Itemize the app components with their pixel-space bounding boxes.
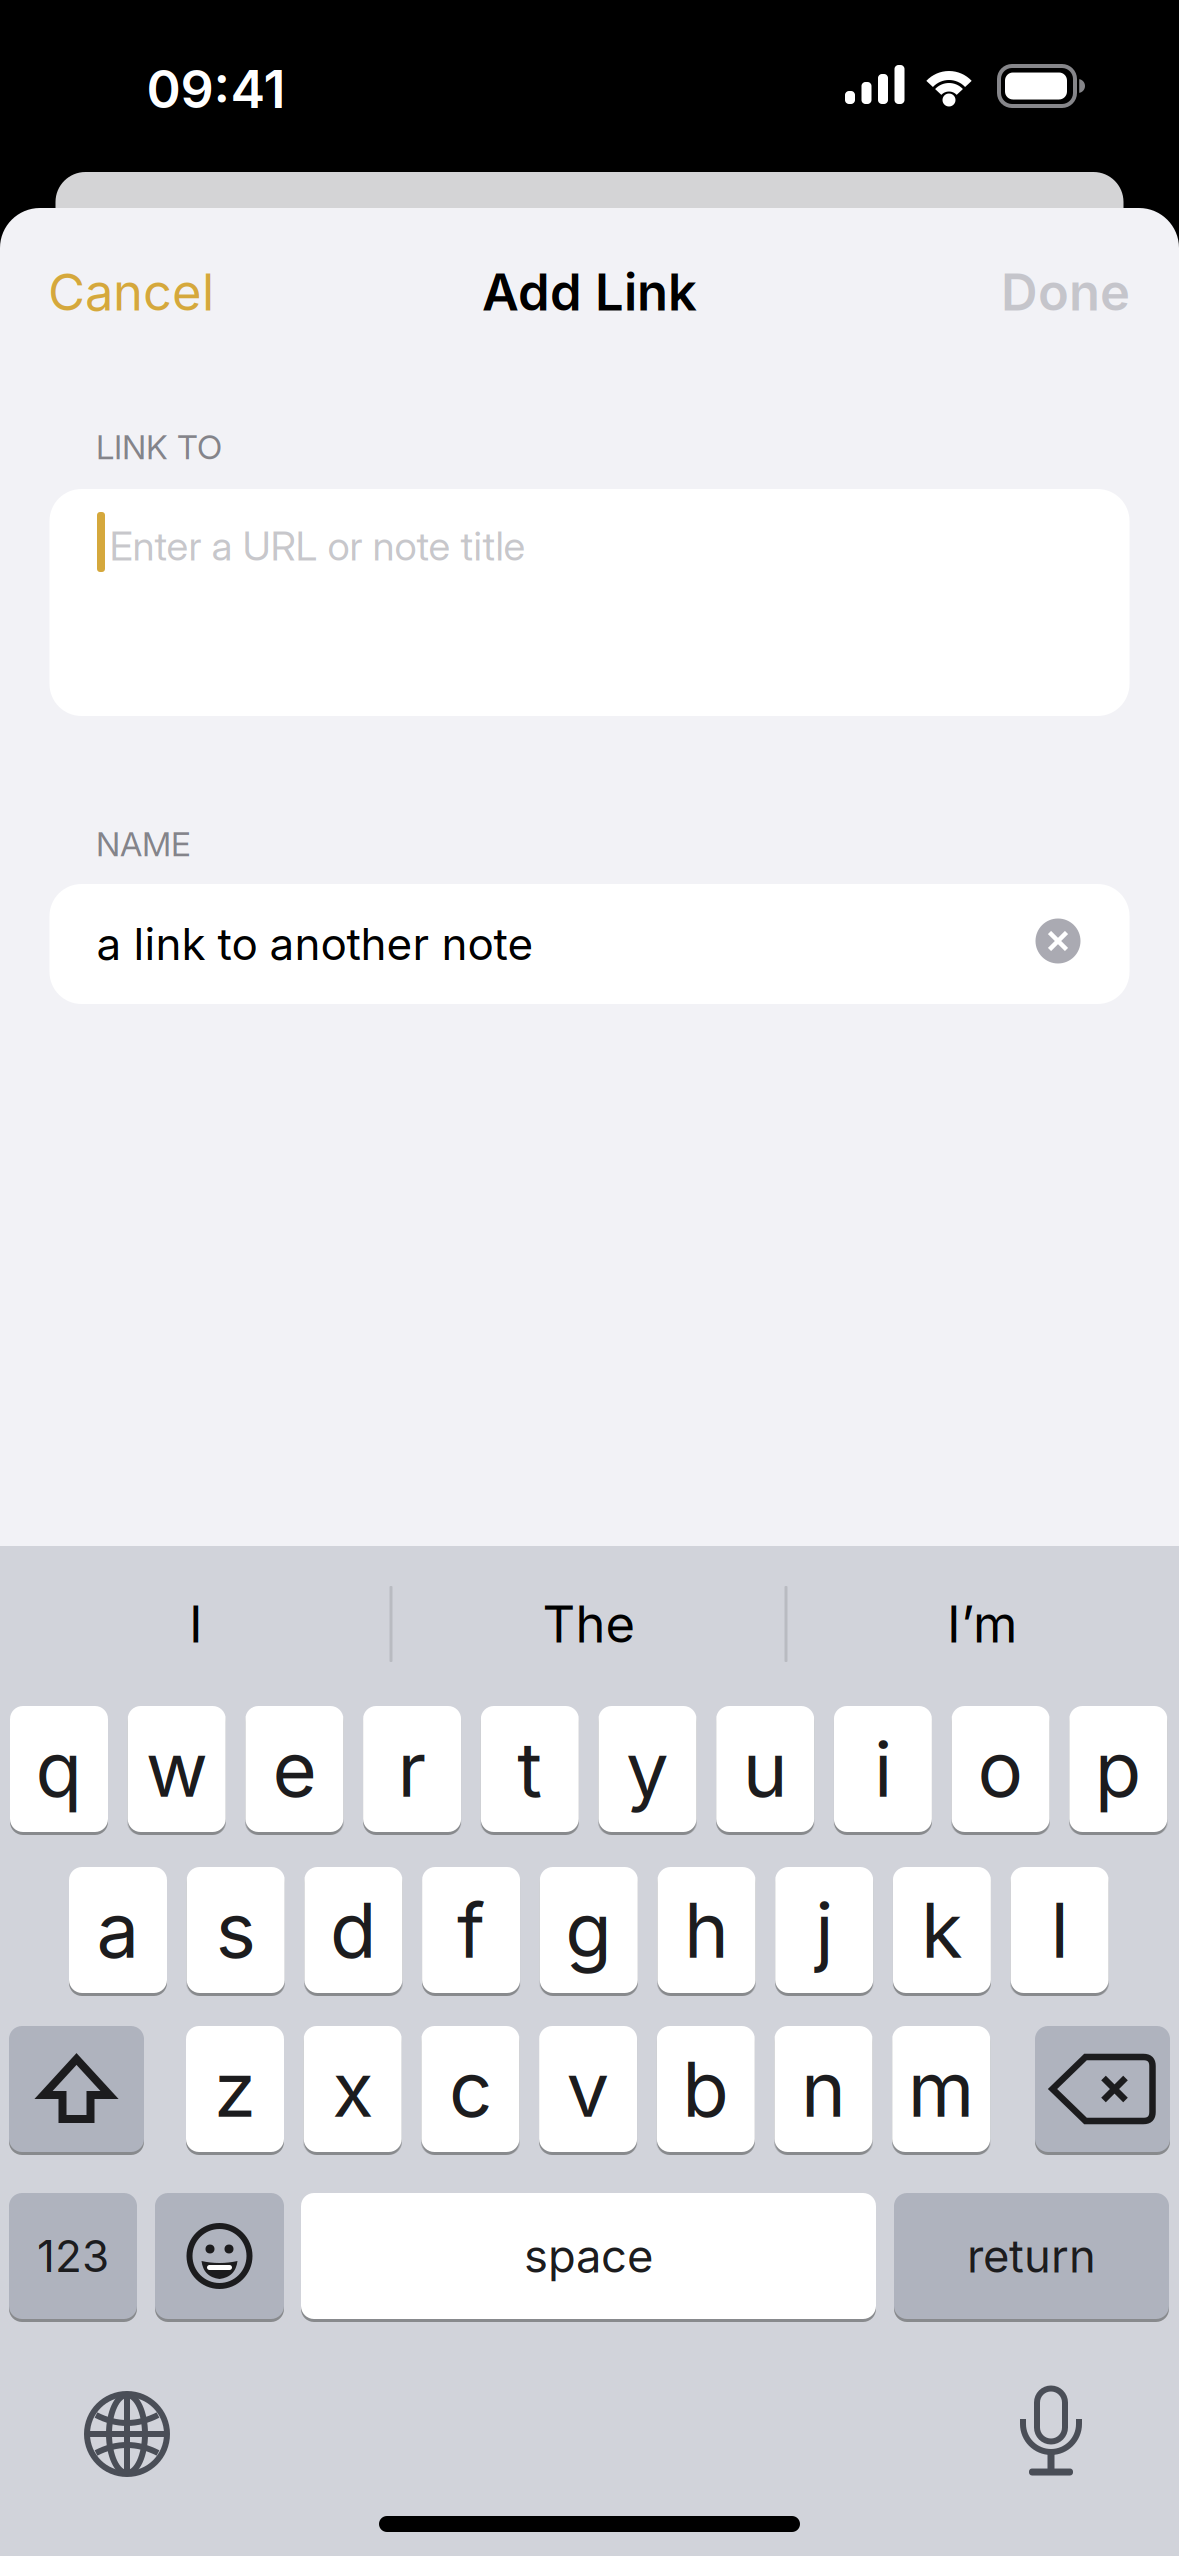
button[interactable]: u bbox=[716, 1706, 814, 1832]
button[interactable]: p bbox=[1069, 1706, 1167, 1832]
button[interactable]: o bbox=[952, 1706, 1050, 1832]
staticText: k bbox=[921, 1885, 963, 1975]
button[interactable]: Dictation bbox=[991, 2372, 1111, 2492]
staticText: r bbox=[398, 1724, 427, 1814]
staticText: o bbox=[978, 1724, 1024, 1814]
button[interactable]: d bbox=[304, 1867, 402, 1993]
button[interactable]: Clear text bbox=[1035, 918, 1080, 963]
button[interactable]: I’m bbox=[792, 1569, 1172, 1679]
button[interactable]: g bbox=[540, 1867, 638, 1993]
button[interactable]: v bbox=[539, 2026, 637, 2152]
staticText: NAME bbox=[96, 824, 191, 864]
button[interactable]: 123 bbox=[9, 2193, 137, 2319]
button[interactable]: I bbox=[6, 1569, 386, 1679]
button[interactable]: Cancel bbox=[48, 262, 348, 322]
staticText: e bbox=[272, 1724, 316, 1814]
button[interactable]: t bbox=[481, 1706, 579, 1832]
staticText: s bbox=[216, 1885, 256, 1975]
staticText: f bbox=[457, 1885, 485, 1975]
staticText: p bbox=[1095, 1724, 1142, 1814]
button[interactable]: Delete bbox=[1035, 2026, 1170, 2152]
staticText: u bbox=[743, 1724, 788, 1814]
button[interactable]: return bbox=[894, 2193, 1169, 2319]
button[interactable]: Next keyboard bbox=[67, 2374, 187, 2494]
staticText: q bbox=[35, 1724, 82, 1814]
staticText: v bbox=[567, 2044, 610, 2134]
staticText: a bbox=[96, 1885, 139, 1975]
staticText: j bbox=[815, 1885, 833, 1975]
staticText: t bbox=[517, 1724, 542, 1814]
button[interactable]: Name bbox=[49, 884, 1129, 1004]
button[interactable]: Done bbox=[830, 262, 1130, 322]
staticText: Add Link bbox=[482, 262, 697, 322]
staticText: The bbox=[542, 1594, 635, 1654]
staticText: x bbox=[332, 2044, 373, 2134]
button[interactable]: c bbox=[421, 2026, 519, 2152]
staticText: n bbox=[801, 2044, 846, 2134]
button[interactable]: Enter a URL or note title bbox=[49, 489, 1129, 716]
button[interactable]: k bbox=[893, 1867, 991, 1993]
staticText: Done bbox=[1001, 262, 1130, 322]
button[interactable]: s bbox=[187, 1867, 285, 1993]
staticText: Cancel bbox=[48, 262, 214, 322]
button[interactable]: Emoji bbox=[155, 2193, 284, 2319]
button[interactable]: The bbox=[399, 1569, 779, 1679]
staticText: 09:41 bbox=[146, 58, 285, 120]
staticText: a link to another note bbox=[96, 918, 533, 970]
button[interactable]: x bbox=[304, 2026, 402, 2152]
staticText: w bbox=[146, 1724, 208, 1814]
button[interactable]: z bbox=[186, 2026, 284, 2152]
staticText: i bbox=[874, 1724, 892, 1814]
staticText: g bbox=[565, 1885, 612, 1975]
button[interactable]: r bbox=[363, 1706, 461, 1832]
button[interactable]: n bbox=[774, 2026, 872, 2152]
staticText: return bbox=[967, 2229, 1096, 2283]
button[interactable]: space bbox=[301, 2193, 876, 2319]
staticText: Enter a URL or note title bbox=[109, 522, 525, 570]
button[interactable]: j bbox=[775, 1867, 873, 1993]
button[interactable]: i bbox=[834, 1706, 932, 1832]
button[interactable]: w bbox=[128, 1706, 226, 1832]
button[interactable]: h bbox=[657, 1867, 755, 1993]
staticText: d bbox=[330, 1885, 377, 1975]
button[interactable]: q bbox=[10, 1706, 108, 1832]
staticText: h bbox=[684, 1885, 729, 1975]
staticText: l bbox=[1051, 1885, 1069, 1975]
button[interactable]: b bbox=[657, 2026, 755, 2152]
button[interactable]: m bbox=[892, 2026, 990, 2152]
staticText: LINK TO bbox=[96, 427, 222, 467]
button[interactable]: Shift bbox=[9, 2026, 144, 2152]
staticText: space bbox=[524, 2229, 653, 2283]
staticText: I bbox=[189, 1594, 203, 1654]
button[interactable]: f bbox=[422, 1867, 520, 1993]
staticText: b bbox=[682, 2044, 729, 2134]
staticText: c bbox=[449, 2044, 492, 2134]
button[interactable]: a bbox=[69, 1867, 167, 1993]
button[interactable]: l bbox=[1011, 1867, 1109, 1993]
staticText: m bbox=[908, 2044, 975, 2134]
staticText: 123 bbox=[37, 2230, 109, 2282]
staticText: z bbox=[214, 2044, 256, 2134]
button[interactable]: e bbox=[245, 1706, 343, 1832]
staticText: y bbox=[626, 1724, 669, 1814]
staticText: I’m bbox=[947, 1594, 1017, 1654]
button[interactable]: y bbox=[598, 1706, 696, 1832]
